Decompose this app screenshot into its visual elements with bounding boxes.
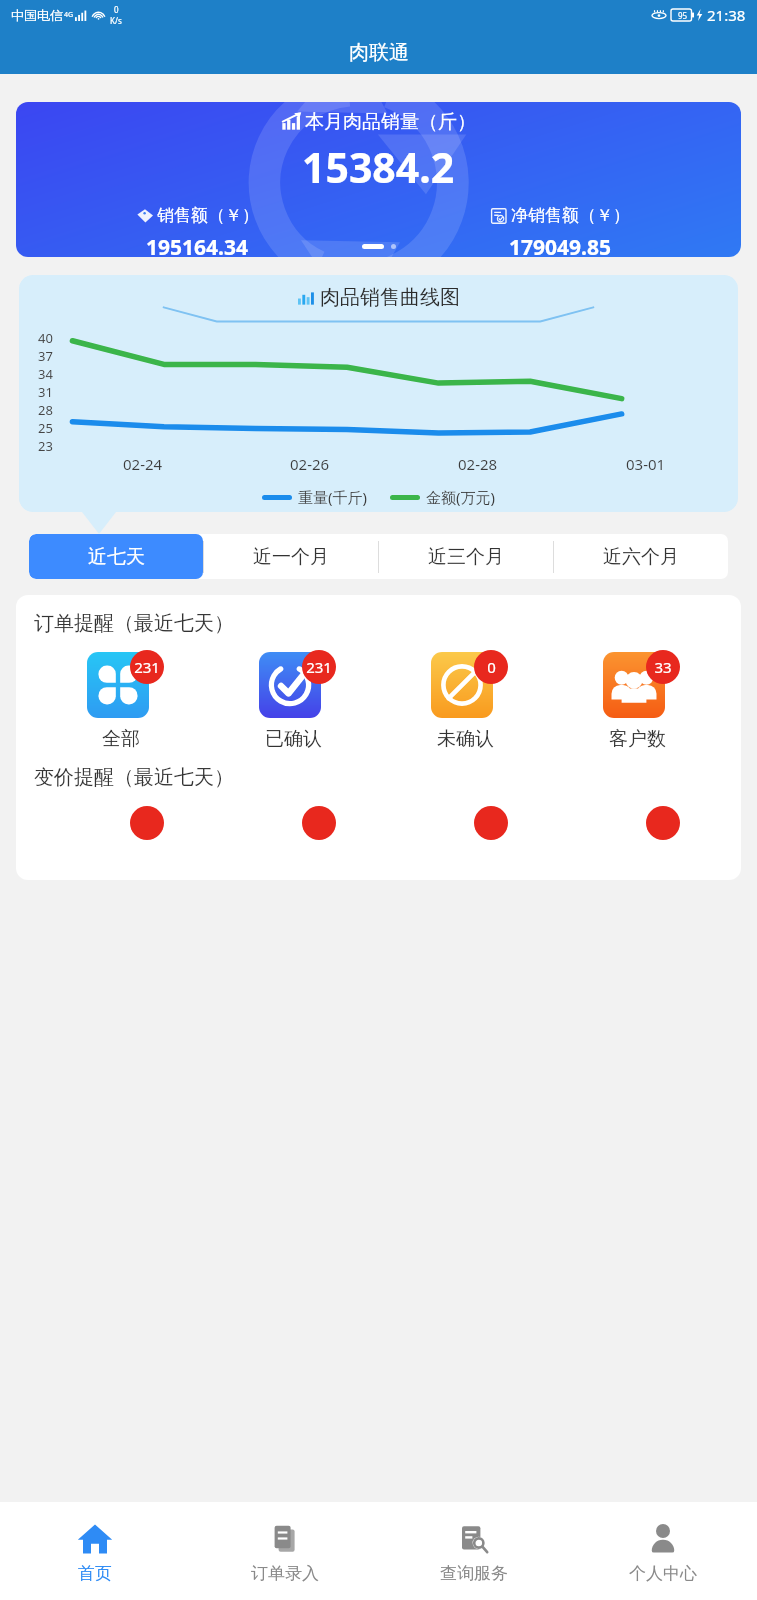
staticText: 变价提醒（最近七天） [34,765,234,790]
staticText: 02-24 [123,454,163,474]
staticText: 25 [38,419,53,437]
staticText: 0 [487,657,496,677]
button[interactable]: 231 [207,650,379,751]
button[interactable]: 个人中心 [568,1502,757,1600]
staticText: 23 [38,437,53,452]
staticText: 02-26 [290,454,330,474]
staticText: 21:38 [707,5,746,25]
staticText: 首页 [78,1563,112,1584]
staticText: 34 [38,365,53,383]
staticText: 231 [134,657,160,677]
staticText: 231 [306,657,332,677]
staticText: 95 [678,10,688,21]
staticText: 个人中心 [629,1563,697,1584]
staticText: 中国电信 [11,7,63,23]
staticText: 净销售额（￥） [511,205,630,226]
staticText: 肉联通 [349,40,409,65]
staticText: 金额(万元) [426,487,496,507]
button[interactable]: 订单录入 [190,1502,379,1600]
staticText: 订单提醒（最近七天） [34,611,234,636]
staticText: 销售额（￥） [157,205,259,226]
staticText: 03-01 [626,454,666,474]
button[interactable]: 近三个月 [378,534,553,579]
button[interactable]: 首页 [0,1502,190,1600]
button[interactable]: 近六个月 [553,534,728,579]
staticText: 15384.2 [302,139,455,195]
staticText: 全部 [102,727,140,751]
staticText: 4G [64,10,74,20]
staticText: 33 [654,657,672,677]
staticText: 28 [38,401,53,419]
button[interactable]: 查询服务 [379,1502,568,1600]
staticText: 近六个月 [603,545,679,569]
staticText: K/s [110,15,122,26]
staticText: 本月肉品销量（斤） [305,110,476,134]
staticText: 近三个月 [428,545,504,569]
staticText: 已确认 [265,727,322,751]
button[interactable]: 近七天 [29,534,203,579]
staticText: 0 [114,4,119,15]
staticText: 179049.85 [509,233,611,257]
staticText: 重量(千斤) [298,487,368,507]
button[interactable]: 231 [34,650,207,751]
staticText: 02-28 [458,454,498,474]
staticText: 近一个月 [253,545,329,569]
staticText: 肉品销售曲线图 [320,285,460,310]
button[interactable]: 近一个月 [203,534,378,579]
staticText: 订单录入 [251,1563,319,1584]
staticText: 查询服务 [440,1563,508,1584]
staticText: 客户数 [609,727,666,751]
button[interactable]: 本月肉品销量（斤） [16,102,741,257]
staticText: 40 [38,329,53,347]
staticText: 195164.34 [146,233,248,257]
staticText: 37 [38,347,53,365]
staticText: 31 [38,383,53,401]
button[interactable]: 33 [551,650,723,751]
staticText: 近七天 [88,545,145,569]
button[interactable]: 0 [379,650,551,751]
staticText: 未确认 [437,727,494,751]
